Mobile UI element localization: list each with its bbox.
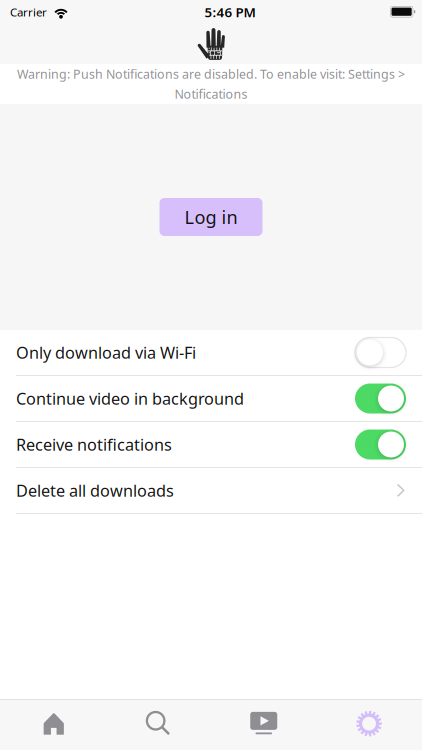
staticText: Warning: Push Notifications are disabled… <box>17 66 405 82</box>
button[interactable]: Continue video in background <box>0 376 422 422</box>
staticText: Log in <box>184 205 237 229</box>
button[interactable]: Delete all downloads <box>0 468 422 514</box>
button[interactable]: Home <box>0 700 105 750</box>
button[interactable]: Search <box>105 700 211 750</box>
button[interactable]: Videos <box>211 700 316 750</box>
staticText: 5:46 PM <box>204 3 255 21</box>
button[interactable]: Only download via Wi-Fi <box>0 330 422 376</box>
staticText: Continue video in background <box>16 387 244 410</box>
button[interactable]: Settings <box>316 700 422 750</box>
staticText: Delete all downloads <box>16 479 174 502</box>
staticText: Receive notifications <box>16 433 172 456</box>
button[interactable]: Receive notifications <box>0 422 422 468</box>
staticText: Only download via Wi-Fi <box>16 341 196 364</box>
staticText: Notifications <box>174 85 247 102</box>
staticText: Carrier <box>10 4 47 20</box>
button[interactable]: Log in <box>159 198 262 236</box>
